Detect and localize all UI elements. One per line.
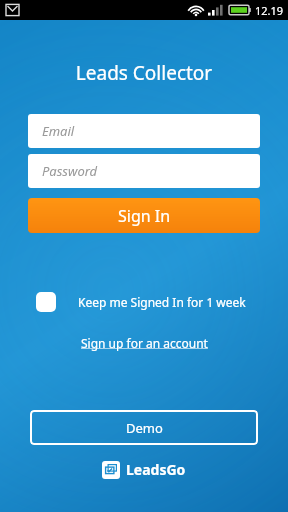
button[interactable]: Sign In bbox=[28, 198, 260, 233]
staticText: LeadsGo bbox=[126, 460, 186, 479]
staticText: Leads Collector bbox=[0, 60, 288, 86]
staticText: Email bbox=[42, 122, 75, 140]
button[interactable]: Keep me Signed In for 1 week bbox=[0, 288, 288, 316]
button[interactable]: Sign up for an account bbox=[75, 332, 214, 354]
staticText: 12.19 bbox=[255, 3, 284, 18]
staticText: Demo bbox=[126, 419, 163, 437]
button[interactable]: Email bbox=[28, 114, 260, 148]
button[interactable]: Demo bbox=[30, 410, 258, 445]
staticText: Password bbox=[42, 162, 98, 180]
staticText: Sign In bbox=[118, 205, 171, 227]
staticText: Keep me Signed In for 1 week bbox=[78, 294, 246, 310]
button[interactable]: Password bbox=[28, 154, 260, 188]
